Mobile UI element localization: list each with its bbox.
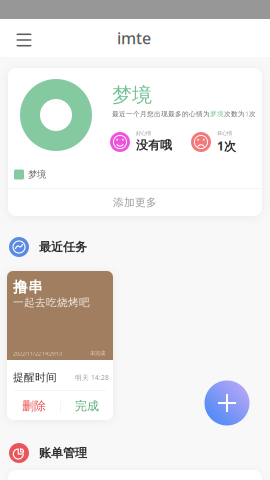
staticText: 1 — [245, 110, 249, 118]
staticText: 1次 — [217, 138, 236, 154]
staticText: 次数为 — [224, 110, 245, 118]
staticText: imte — [117, 27, 151, 49]
staticText: 没有哦 — [136, 138, 172, 153]
staticText: 梦境 — [28, 169, 46, 180]
staticText: 添加更多 — [113, 196, 157, 209]
button[interactable]: Menu — [5, 21, 43, 59]
staticText: 次 — [249, 110, 256, 118]
staticText: 好心情 — [136, 130, 151, 137]
staticText: 最近一个月您出现最多的心情为 — [112, 110, 210, 118]
staticText: 提醒时间 — [13, 371, 57, 384]
button[interactable]: 添加更多 — [8, 189, 262, 216]
button[interactable]: Add — [199, 375, 255, 431]
staticText: 删除 — [22, 399, 46, 413]
button[interactable]: 完成 — [61, 392, 113, 420]
staticText: 2022/11/22 14:29:13 — [13, 350, 62, 357]
staticText: 账单管理 — [39, 446, 87, 460]
staticText: 坏心情 — [217, 130, 232, 137]
staticText: 梦境 — [210, 110, 224, 118]
staticText: 明天 14:28 — [75, 373, 109, 382]
staticText: 未完成 — [90, 350, 105, 357]
staticText: 一起去吃烧烤吧 — [13, 296, 90, 309]
staticText: 最近任务 — [39, 240, 87, 254]
staticText: 撸串 — [13, 278, 43, 296]
button[interactable]: 删除 — [8, 392, 60, 420]
staticText: 梦境 — [112, 83, 152, 107]
staticText: 完成 — [75, 399, 99, 413]
